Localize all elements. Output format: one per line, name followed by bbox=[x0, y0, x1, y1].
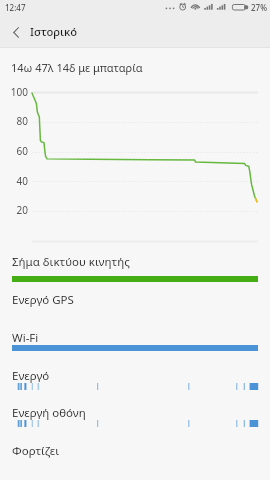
staticText: Ενεργό GPS bbox=[12, 292, 74, 308]
staticText: Φορτίζει bbox=[12, 443, 60, 459]
button[interactable]: Back bbox=[5, 20, 26, 48]
staticText: Ενεργή οθόνη bbox=[12, 405, 86, 421]
staticText: 40 bbox=[0, 174, 28, 188]
staticText: 60 bbox=[0, 144, 28, 158]
staticText: Σήμα δικτύου κινητής bbox=[12, 254, 130, 270]
button[interactable]: Σήμα δικτύου κινητής bbox=[0, 243, 270, 288]
button[interactable]: Ενεργό bbox=[0, 364, 270, 402]
staticText: Ιστορικό bbox=[30, 24, 78, 39]
staticText: Ενεργό bbox=[12, 368, 50, 384]
button[interactable]: Ενεργό GPS bbox=[0, 288, 270, 326]
staticText: 100 bbox=[0, 85, 28, 99]
button[interactable]: Φορτίζει bbox=[0, 439, 270, 480]
staticText: 80 bbox=[0, 114, 28, 128]
staticText: 14ω 47λ 14δ με μπαταρία bbox=[11, 60, 143, 75]
staticText: 12:47 bbox=[5, 2, 26, 13]
button[interactable]: Wi-Fi bbox=[0, 326, 270, 364]
button[interactable]: Ενεργή οθόνη bbox=[0, 401, 270, 439]
staticText: 27% bbox=[251, 2, 267, 13]
staticText: 20 bbox=[0, 203, 28, 217]
staticText: Wi-Fi bbox=[12, 330, 39, 346]
